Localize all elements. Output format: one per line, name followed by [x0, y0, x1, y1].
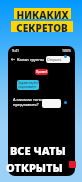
staticText: 9:41 — [12, 48, 19, 53]
staticText: А сколько тяпов предложить? — [13, 97, 45, 107]
staticText: ОТКРЫТЫ — [6, 160, 63, 175]
staticText: Привет! — [36, 70, 48, 74]
staticText: 100% — [62, 48, 71, 53]
staticText: Канал группы — [17, 57, 44, 62]
staticText: Открыть — [47, 57, 62, 62]
staticText: Здравствуйте! подскажите — [18, 81, 39, 89]
staticText: НИКАКИХ — [16, 8, 69, 19]
staticText: СЕКРЕТОВ — [16, 21, 68, 32]
staticText: ← — [11, 56, 16, 62]
button[interactable]: ← — [11, 55, 46, 63]
staticText: ВСЕ ЧАТЫ — [10, 143, 66, 158]
